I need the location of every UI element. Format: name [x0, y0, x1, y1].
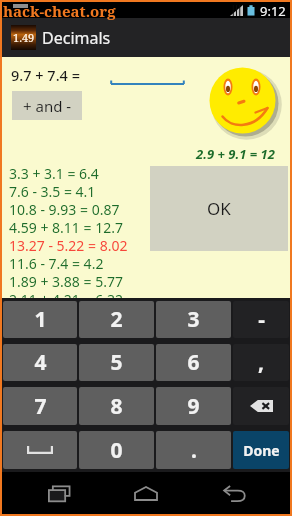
button[interactable]: Recents	[29, 472, 89, 514]
staticText: Done	[243, 441, 280, 460]
button[interactable]: 0	[79, 431, 154, 469]
staticText: 7	[34, 392, 47, 421]
button[interactable]: ,	[233, 344, 289, 381]
staticText: 7.6 - 3.5 = 4.1	[9, 182, 96, 200]
staticText: 1.49	[13, 30, 35, 45]
staticText: 2	[110, 305, 123, 334]
button[interactable]: Space	[3, 431, 77, 469]
staticText: hack-cheat.org	[3, 1, 116, 21]
staticText: 5	[110, 348, 123, 377]
button[interactable]: 6	[156, 344, 231, 381]
staticText: 9:12	[260, 2, 286, 18]
staticText: 1	[34, 305, 47, 334]
staticText: 6	[187, 348, 200, 377]
staticText: -	[258, 305, 265, 334]
other: Delete	[250, 400, 273, 412]
staticText: 3.3 + 3.1 = 6.4	[9, 164, 99, 182]
button[interactable]: Back	[203, 472, 263, 514]
button[interactable]: 5	[79, 344, 154, 381]
button[interactable]: 2	[79, 301, 154, 338]
staticText: 9	[187, 392, 200, 421]
button[interactable]: 4	[3, 344, 77, 381]
staticText: 2.11 + 4.21 = 6.32	[9, 290, 123, 308]
button[interactable]: Done	[233, 431, 289, 469]
button[interactable]: 9	[156, 387, 231, 425]
button[interactable]: Home	[116, 472, 176, 514]
button[interactable]: Delete	[233, 387, 289, 425]
staticText: 9.7 + 7.4 =	[11, 65, 80, 85]
staticText: Decimals	[42, 27, 111, 49]
button[interactable]: .	[156, 431, 231, 469]
button[interactable]: 1	[3, 301, 77, 338]
staticText: 10.8 - 9.93 = 0.87	[9, 200, 120, 218]
staticText: .	[191, 436, 197, 465]
staticText: + and -	[23, 96, 72, 116]
button[interactable]: + and -	[12, 91, 82, 120]
button[interactable]: OK	[150, 166, 288, 251]
staticText: 3	[187, 305, 200, 334]
staticText: 8	[110, 392, 123, 421]
staticText: 1.89 + 3.88 = 5.77	[9, 272, 123, 290]
staticText: 13.27 - 5.22 = 8.02	[9, 236, 128, 254]
staticText: 0	[110, 436, 123, 465]
staticText: 4.59 + 8.11 = 12.7	[9, 218, 123, 236]
button[interactable]: 7	[3, 387, 77, 425]
staticText: 4	[34, 348, 47, 377]
other: Space	[27, 446, 53, 454]
button[interactable]: 8	[79, 387, 154, 425]
staticText: ,	[258, 348, 264, 377]
staticText: OK	[207, 197, 231, 220]
staticText: 2.9 + 9.1 = 12	[196, 145, 275, 163]
button[interactable]: -	[233, 301, 289, 338]
staticText: 11.6 - 7.4 = 4.2	[9, 254, 104, 272]
button[interactable]: 3	[156, 301, 231, 338]
